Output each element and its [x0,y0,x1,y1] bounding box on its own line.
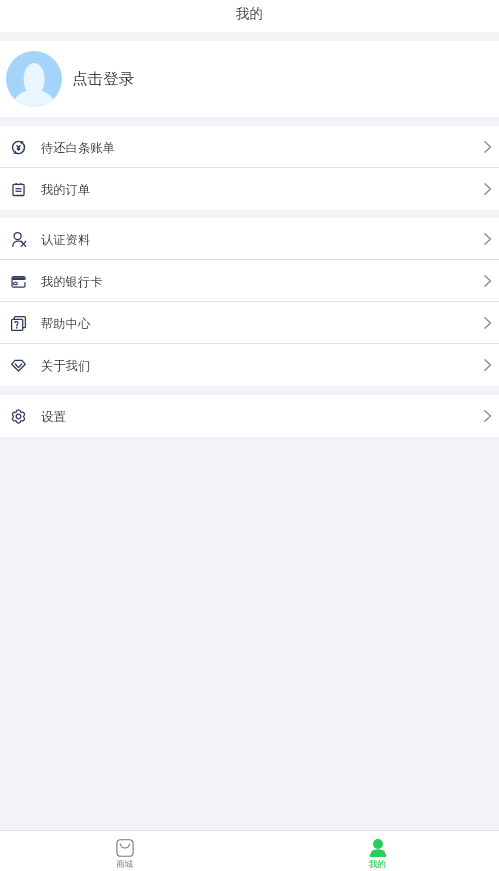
button[interactable]: 我的订单 [0,168,499,210]
button[interactable]: 商城 [89,834,161,871]
staticText: 商城 [116,859,134,870]
staticText: 待还白条账单 [41,140,115,155]
button[interactable]: 我的银行卡 [0,260,499,302]
staticText: 设置 [41,409,66,424]
button[interactable]: 帮助中心 [0,302,499,344]
button[interactable]: 点击登录 [0,41,499,117]
button[interactable]: 设置 [0,395,499,437]
staticText: 我的 [369,859,387,870]
button[interactable]: 待还白条账单 [0,126,499,168]
staticText: 认证资料 [41,232,91,247]
button[interactable]: 关于我们 [0,344,499,386]
button[interactable]: 我的 [342,834,414,871]
staticText: 关于我们 [41,358,91,373]
staticText: 我的订单 [41,182,91,197]
staticText: 帮助中心 [41,316,91,331]
staticText: 我的 [236,5,263,22]
button[interactable]: 认证资料 [0,218,499,260]
staticText: 我的银行卡 [41,274,103,289]
staticText: 点击登录 [72,69,135,89]
